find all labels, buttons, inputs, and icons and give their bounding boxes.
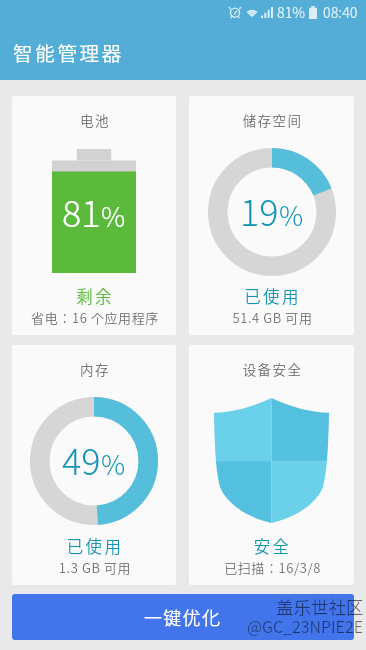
button[interactable]: 储存空间 — [189, 96, 354, 335]
button[interactable]: 设备安全 — [189, 345, 354, 585]
staticText: 智能管理器 — [13, 38, 125, 66]
staticText: 安全 — [190, 534, 354, 558]
button[interactable]: 电池 — [12, 96, 176, 335]
staticText: 储存空间 — [190, 110, 354, 130]
staticText: 省电：16 个应用程序 — [13, 308, 176, 327]
staticText: % — [279, 195, 304, 234]
other: Alarm — [229, 6, 241, 18]
staticText: 剩余 — [13, 284, 176, 308]
staticText: 已使用 — [190, 284, 354, 308]
staticText: % — [101, 196, 126, 235]
staticText: 已使用 — [13, 534, 176, 558]
staticText: 51.4 GB 可用 — [190, 308, 354, 327]
button[interactable]: 一键优化 — [12, 594, 354, 640]
staticText: 盖乐世社区 — [276, 594, 364, 619]
staticText: 49 — [62, 433, 101, 485]
button[interactable]: 内存 — [12, 345, 176, 585]
staticText: 08:40 — [323, 2, 358, 22]
staticText: 一键优化 — [144, 604, 222, 630]
staticText: 设备安全 — [190, 359, 354, 379]
staticText: @GC_23NPIE2E — [247, 614, 364, 637]
staticText: 81 — [62, 185, 101, 237]
staticText: % — [101, 444, 126, 483]
staticText: 19 — [240, 184, 279, 236]
staticText: 已扫描：16/3/8 — [190, 558, 354, 577]
staticText: 内存 — [13, 359, 176, 379]
staticText: 电池 — [13, 110, 176, 130]
staticText: 81% — [277, 2, 306, 22]
staticText: 1.3 GB 可用 — [13, 558, 176, 577]
